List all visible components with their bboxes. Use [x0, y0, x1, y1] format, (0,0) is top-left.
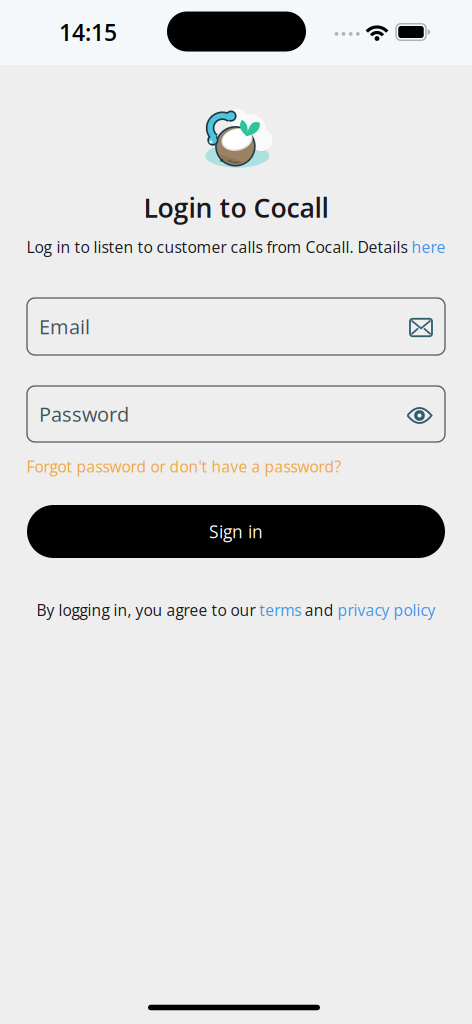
- button[interactable]: Forgot password or don't have a password…: [26, 456, 341, 477]
- staticText: Log in to listen to customer calls from …: [26, 236, 407, 258]
- staticText: Forgot password or don't have a password…: [26, 456, 341, 477]
- staticText: and: [305, 599, 334, 621]
- staticText: here: [411, 236, 445, 258]
- button[interactable]: privacy policy: [337, 599, 435, 621]
- button[interactable]: here: [411, 236, 445, 258]
- button[interactable]: Password: [27, 386, 445, 442]
- button[interactable]: Email: [27, 298, 445, 355]
- staticText: privacy policy: [337, 599, 435, 621]
- button[interactable]: terms: [259, 599, 301, 621]
- staticText: Login to Cocall: [143, 189, 328, 226]
- staticText: terms: [259, 599, 301, 621]
- staticText: Password: [39, 400, 129, 428]
- staticText: By logging in, you agree to our: [37, 599, 256, 621]
- button[interactable]: Sign in: [27, 505, 445, 558]
- staticText: Email: [39, 313, 90, 340]
- staticText: Sign in: [209, 520, 263, 543]
- staticText: 14:15: [59, 16, 117, 48]
